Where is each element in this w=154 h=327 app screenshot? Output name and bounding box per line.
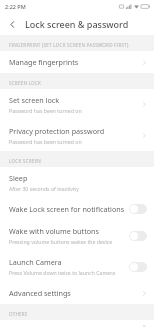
staticText: Password has been turned on [9, 107, 82, 114]
button[interactable]: Set screen lock [0, 89, 154, 120]
staticText: LOCK SCREEN [9, 158, 41, 164]
staticText: Password has been turned on [9, 138, 82, 145]
staticText: Sleep [9, 173, 28, 183]
staticText: 2:22 PM [5, 3, 26, 10]
staticText: FINGERPRINT (SET LOCK SCREEN PASSWORD FI… [9, 42, 129, 48]
staticText: OTHERS [9, 311, 28, 317]
button[interactable]: Launch Camera [0, 251, 154, 282]
staticText: SCREEN LOCK [9, 80, 41, 86]
staticText: Pressing volume buttons wakes the device [9, 238, 113, 245]
staticText: Lock screen & password [25, 18, 129, 30]
button[interactable]: Back [4, 16, 20, 32]
staticText: Press Volume down twice to launch Camera [9, 269, 116, 276]
button[interactable]: Sleep [0, 167, 154, 198]
button[interactable]: Wake with volume buttons [0, 220, 154, 251]
staticText: Wake Lock screen for notifications [9, 204, 125, 214]
button[interactable]: Privacy protection password [0, 120, 154, 151]
staticText: Privacy protection password [9, 126, 105, 136]
staticText: Set screen lock [9, 95, 60, 105]
staticText: Launch Camera [9, 257, 62, 267]
button[interactable]: Manage fingerprints [0, 51, 154, 73]
staticText: After 30 seconds of inactivity [9, 185, 79, 192]
button[interactable]: Wake Lock screen for notifications [0, 198, 154, 220]
button[interactable]: Advanced settings [0, 282, 154, 304]
staticText: Wake with volume buttons [9, 226, 99, 236]
staticText: Advanced settings [9, 288, 71, 298]
staticText: Manage fingerprints [9, 57, 79, 67]
